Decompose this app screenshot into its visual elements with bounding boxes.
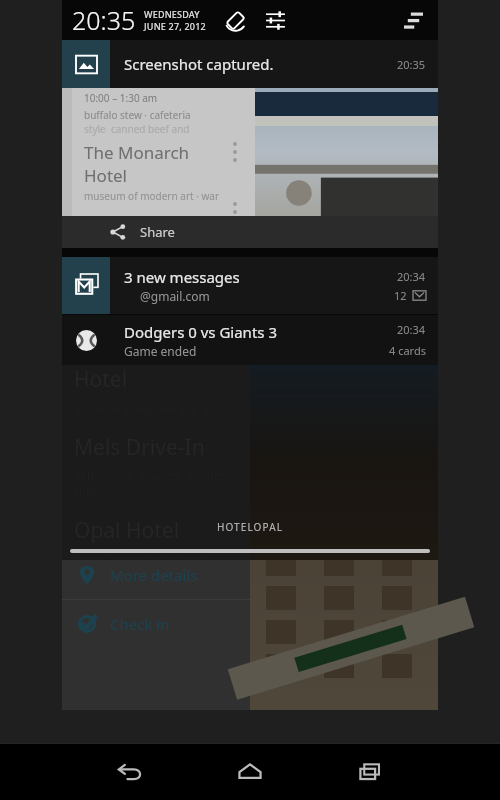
staticText: 20:35 — [72, 3, 136, 37]
staticText: WEDNESDAY — [144, 8, 200, 20]
staticText: Hotel — [74, 365, 128, 394]
staticText: JUNE 27, 2012 — [144, 20, 206, 32]
staticText: HOTELOPAL — [217, 520, 283, 534]
button[interactable]: Share — [62, 216, 438, 248]
staticText: 20:35 — [397, 57, 426, 72]
staticText: More details — [110, 565, 198, 585]
staticText: 12 — [394, 288, 407, 303]
staticText: 20:34 — [397, 269, 426, 284]
staticText: 20:34 — [397, 322, 426, 337]
staticText: 10:00 – 1:30 am — [84, 91, 158, 105]
staticText: Mels Drive-In — [74, 433, 205, 462]
button[interactable]: Home — [190, 744, 310, 800]
staticText: Game ended — [124, 343, 197, 359]
staticText: 3 new messages — [124, 267, 240, 287]
button[interactable]: Back — [70, 744, 190, 800]
staticText: Share — [140, 223, 175, 241]
button[interactable]: Rotation lock — [220, 5, 250, 35]
staticText: Dodgers 0 vs Giants 3 — [124, 322, 277, 342]
button[interactable]: Recent apps — [310, 744, 430, 800]
button[interactable]: Screenshot captured. — [62, 40, 438, 88]
staticText: 4 cards — [389, 343, 426, 358]
button[interactable]: Clear all notifications — [396, 3, 430, 37]
staticText: museum of modern art · war — [84, 189, 220, 203]
button[interactable]: Settings — [260, 5, 290, 35]
button[interactable]: Dodgers 0 vs Giants 3 — [62, 315, 438, 365]
staticText: Screenshot captured. — [124, 54, 274, 74]
staticText: Hotel — [84, 164, 127, 187]
staticText: Show sample cards — [187, 745, 313, 764]
staticText: buffalo stew · cafeteria — [84, 108, 191, 122]
button[interactable]: 3 new messages — [62, 257, 438, 314]
staticText: The Monarch — [84, 141, 190, 164]
button[interactable] — [70, 549, 430, 553]
button[interactable]: Check in — [62, 600, 250, 648]
button[interactable]: More details — [62, 551, 250, 599]
staticText: fitness room · high speed — [74, 551, 205, 560]
staticText: Opal Hotel — [74, 516, 180, 545]
staticText: @gmail.com — [140, 288, 210, 304]
staticText: Check in — [110, 614, 170, 634]
staticText: style canned beef and — [84, 122, 190, 136]
